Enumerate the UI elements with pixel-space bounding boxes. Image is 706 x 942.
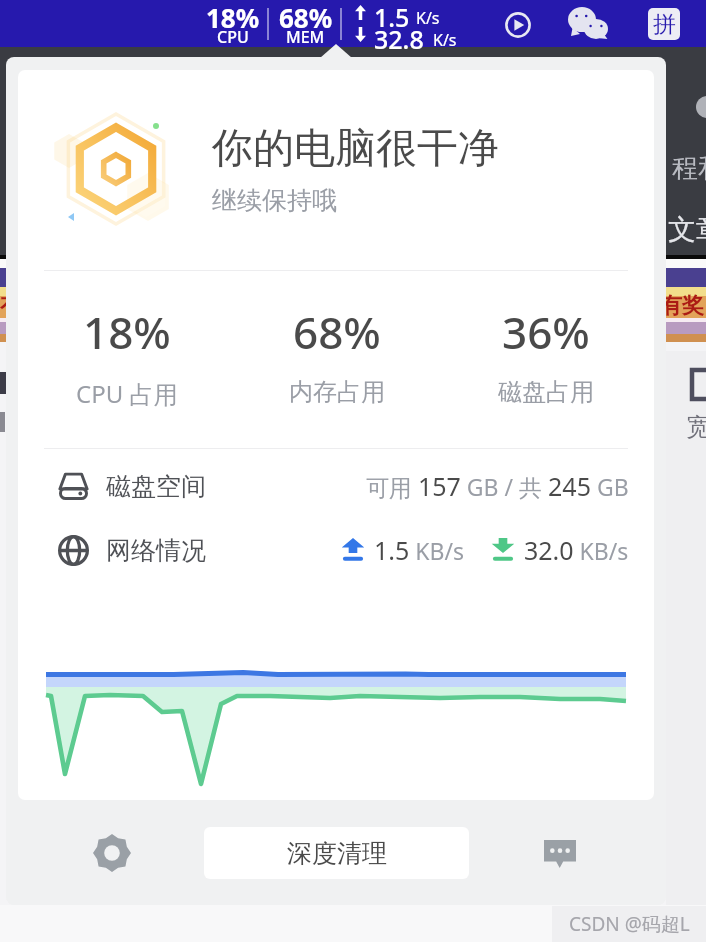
button[interactable]: 拼 <box>648 8 680 40</box>
staticText: MEM <box>286 26 325 48</box>
staticText: 程和 <box>672 152 706 185</box>
staticText: 宽 <box>686 412 706 442</box>
staticText: 文章 <box>668 212 706 247</box>
staticText: CPU 占用 <box>76 377 178 410</box>
button[interactable]: Play <box>503 10 533 40</box>
staticText: 36% <box>502 302 590 362</box>
button[interactable]: Settings <box>88 829 136 877</box>
staticText: 继续保持哦 <box>212 185 337 216</box>
staticText: 深度清理 <box>287 838 387 869</box>
staticText: 32.0 KB/s <box>524 533 629 567</box>
staticText: 18% <box>83 302 171 362</box>
button[interactable]: 磁盘空间 <box>18 454 654 518</box>
staticText: 你的电脑很干净 <box>212 123 499 175</box>
staticText: 内存占用 <box>289 377 385 407</box>
staticText: 18% <box>206 0 260 35</box>
staticText: 有 <box>0 292 22 320</box>
staticText: CPU <box>217 26 249 48</box>
staticText: 1.5 <box>374 0 410 34</box>
staticText: K/s <box>416 7 440 29</box>
staticText: 网络情况 <box>106 535 206 566</box>
button[interactable]: 深度清理 <box>204 827 469 879</box>
staticText: 磁盘空间 <box>106 471 206 502</box>
button[interactable]: 网络情况 <box>18 518 654 582</box>
button[interactable]: Feedback <box>536 830 584 878</box>
staticText: CSDN @码超L <box>569 911 690 937</box>
staticText: 68% <box>293 302 381 362</box>
staticText: 有奖 <box>660 292 704 320</box>
staticText: 1.5 KB/s <box>374 533 465 567</box>
staticText: 32.8 <box>374 22 424 56</box>
staticText: 磁盘占用 <box>498 377 594 407</box>
staticText: 可用 157 GB / 共 245 GB <box>366 469 629 503</box>
staticText: K/s <box>433 29 457 51</box>
staticText: 68% <box>279 0 333 35</box>
button[interactable]: WeChat <box>566 5 610 43</box>
staticText: 拼 <box>653 10 676 39</box>
